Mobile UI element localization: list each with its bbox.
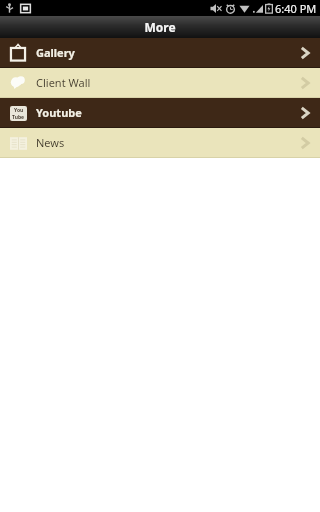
other: Youtube (8, 103, 28, 123)
button[interactable]: Client Wall (0, 68, 320, 98)
staticText: More (144, 19, 176, 35)
button[interactable]: Gallery (0, 38, 320, 68)
button[interactable]: Youtube (0, 98, 320, 128)
staticText: Tube (12, 114, 25, 121)
other: Gallery (8, 43, 28, 63)
other: Client Wall (8, 73, 28, 93)
staticText: News (36, 135, 300, 150)
staticText: Gallery (36, 45, 300, 60)
staticText: Youtube (36, 105, 300, 120)
staticText: Client Wall (36, 75, 300, 90)
button[interactable]: News (0, 128, 320, 158)
other: News (8, 133, 28, 153)
staticText: 6:40 PM (275, 1, 317, 16)
staticText: You (14, 107, 24, 114)
